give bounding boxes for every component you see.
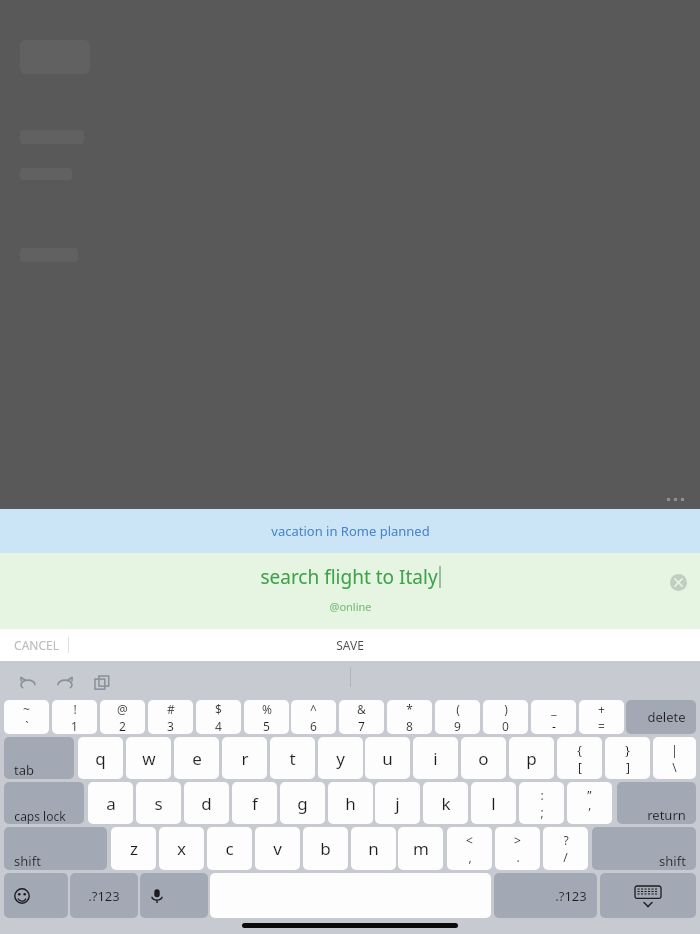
button[interactable]: caps lock [4,782,84,824]
button[interactable]: + [579,700,624,734]
staticText: search flight to Italy [260,564,438,590]
button[interactable]: More options [665,498,686,501]
staticText: _ [551,701,557,717]
staticText: k [441,792,451,815]
button[interactable]: ? [543,827,588,870]
staticText: 7 [358,718,365,734]
button[interactable]: t [270,737,315,779]
staticText: \ [672,759,677,775]
staticText: vacation in Rome planned [271,522,430,540]
button[interactable]: @ [100,700,145,734]
staticText: ’ [588,804,591,820]
button[interactable]: f [232,782,277,824]
button[interactable]: { [557,737,602,779]
staticText: SAVE [336,637,364,653]
button[interactable]: Undo [14,669,42,697]
button[interactable]: % [244,700,289,734]
button[interactable]: tab [4,737,74,779]
button[interactable]: ” [567,782,612,824]
staticText: / [563,849,568,865]
staticText: ^ [310,701,317,717]
button[interactable]: Voice input [140,873,208,918]
button[interactable]: v [255,827,300,870]
button[interactable]: | [653,737,696,779]
button[interactable]: ! [52,700,97,734]
button[interactable]: Emoji [4,873,68,918]
staticText: z [130,837,138,860]
button[interactable]: m [398,827,443,870]
staticText: .?123 [88,887,120,905]
button[interactable]: g [280,782,325,824]
button[interactable]: return [617,782,696,824]
staticText: shift [14,852,41,870]
button[interactable]: n [351,827,396,870]
button[interactable]: ~ [4,700,49,734]
staticText: u [382,747,393,770]
staticText: ; [540,804,544,820]
staticText: .?123 [555,887,587,905]
button[interactable]: k [423,782,468,824]
button[interactable]: ^ [291,700,336,734]
button[interactable]: * [387,700,432,734]
button[interactable]: } [605,737,650,779]
button[interactable]: ) [483,700,528,734]
button[interactable]: w [126,737,171,779]
button[interactable]: < [447,827,492,870]
button[interactable]: u [365,737,410,779]
button[interactable]: CANCEL [14,637,59,653]
button[interactable]: b [303,827,348,870]
button[interactable]: s [136,782,181,824]
button[interactable]: x [159,827,204,870]
button[interactable]: j [375,782,420,824]
button[interactable]: _ [531,700,576,734]
button[interactable]: a [88,782,133,824]
staticText: > [514,832,521,848]
staticText: @online [329,599,372,614]
button[interactable]: : [519,782,564,824]
staticText: h [345,792,356,815]
button[interactable]: o [461,737,506,779]
staticText: ~ [23,701,30,717]
staticText: delete [647,708,686,726]
button[interactable]: shift [4,827,107,870]
button[interactable]: z [111,827,156,870]
staticText: s [154,792,163,815]
button[interactable]: Copy [88,669,116,697]
staticText: < [466,832,473,848]
staticText: o [478,747,489,770]
button[interactable]: y [318,737,363,779]
staticText: caps lock [14,808,66,824]
button[interactable]: h [328,782,373,824]
button[interactable]: .?123 [70,873,138,918]
button[interactable]: SAVE [336,637,364,653]
staticText: 1 [71,718,78,734]
button[interactable]: i [413,737,458,779]
staticText: t [289,747,296,770]
button[interactable]: $ [196,700,241,734]
button[interactable]: l [471,782,516,824]
button[interactable]: r [222,737,267,779]
button[interactable]: # [148,700,193,734]
staticText: , [468,849,472,865]
button[interactable]: .?123 [494,873,597,918]
staticText: ” [587,787,592,803]
button[interactable]: Hide keyboard [600,873,696,918]
staticText: r [241,747,249,770]
button[interactable]: & [339,700,384,734]
button[interactable]: Clear text [666,570,690,594]
button[interactable]: ( [435,700,480,734]
button[interactable]: d [184,782,229,824]
button[interactable]: vacation in Rome planned [0,509,700,553]
staticText: ! [73,701,77,717]
button[interactable]: e [174,737,219,779]
button[interactable]: c [207,827,252,870]
button[interactable]: Redo [51,669,79,697]
button[interactable]: q [78,737,123,779]
button[interactable]: p [509,737,554,779]
staticText: d [201,792,212,815]
button[interactable]: delete [626,700,696,734]
button[interactable]: shift [592,827,696,870]
staticText: m [413,837,429,860]
button[interactable]: > [495,827,540,870]
